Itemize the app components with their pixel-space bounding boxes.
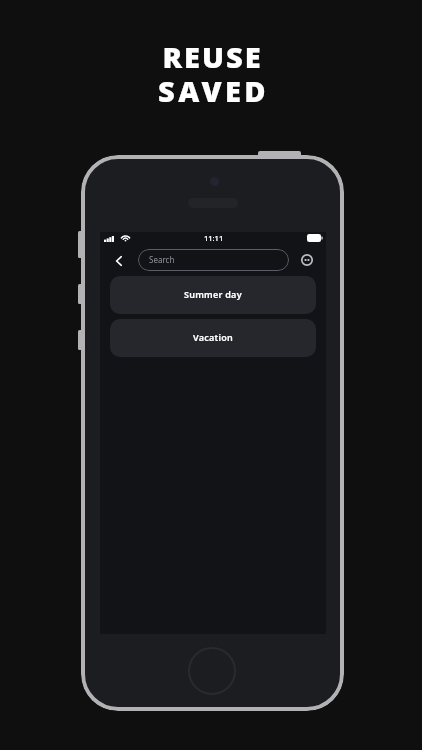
button[interactable]: Summer day	[110, 276, 316, 314]
staticText: 11:11	[204, 233, 224, 243]
staticText: SAVED	[158, 71, 269, 110]
button[interactable]: Vacation	[110, 319, 316, 357]
staticText: Vacation	[193, 331, 234, 343]
staticText: Summer day	[184, 288, 242, 300]
button[interactable]: Search	[138, 249, 289, 271]
button[interactable]: Back	[111, 253, 127, 269]
staticText: Search	[149, 254, 175, 265]
button[interactable]: Profile	[298, 251, 316, 269]
staticText: REUSE	[162, 37, 263, 76]
